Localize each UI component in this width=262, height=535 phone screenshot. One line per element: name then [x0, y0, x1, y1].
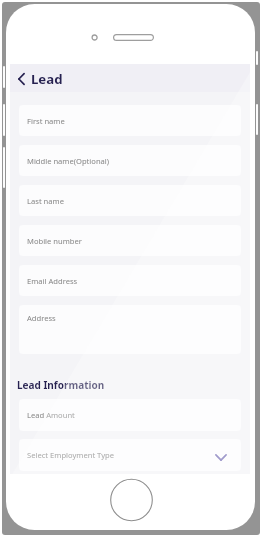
button[interactable]: Last name — [19, 185, 241, 216]
button[interactable]: Middle name(Optional) — [19, 145, 241, 176]
staticText: Middle name(Optional) — [27, 156, 110, 166]
staticText: Select Employment Type — [27, 450, 115, 460]
button[interactable]: Email Address — [19, 265, 241, 296]
button[interactable]: Lead Amount — [19, 399, 241, 431]
staticText: Lead Amount — [27, 410, 75, 420]
staticText: First name — [27, 116, 65, 126]
button[interactable]: Mobile number — [19, 225, 241, 256]
staticText: Lead — [31, 70, 63, 88]
staticText: Address — [27, 313, 56, 323]
button[interactable]: Select Employment Type — [19, 439, 241, 471]
staticText: Mobile number — [27, 236, 82, 246]
staticText: Lead Information — [17, 378, 105, 392]
button[interactable]: Back — [14, 70, 30, 86]
button[interactable]: First name — [19, 105, 241, 136]
button[interactable]: Address — [19, 305, 241, 354]
staticText: Email Address — [27, 276, 78, 286]
staticText: Last name — [27, 196, 64, 206]
